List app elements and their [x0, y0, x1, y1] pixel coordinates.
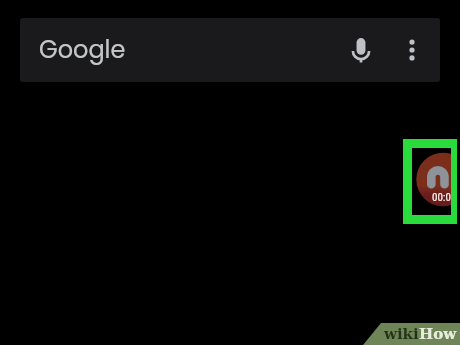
staticText: Google: [39, 33, 126, 67]
staticText: 00:0: [432, 191, 451, 204]
button[interactable]: Search by voice: [332, 18, 390, 82]
staticText: How: [419, 325, 457, 343]
button[interactable]: Screen recorder overlay: [412, 148, 451, 215]
button[interactable]: Google: [20, 18, 440, 82]
staticText: wiki: [384, 325, 419, 343]
button[interactable]: More options: [390, 18, 434, 82]
